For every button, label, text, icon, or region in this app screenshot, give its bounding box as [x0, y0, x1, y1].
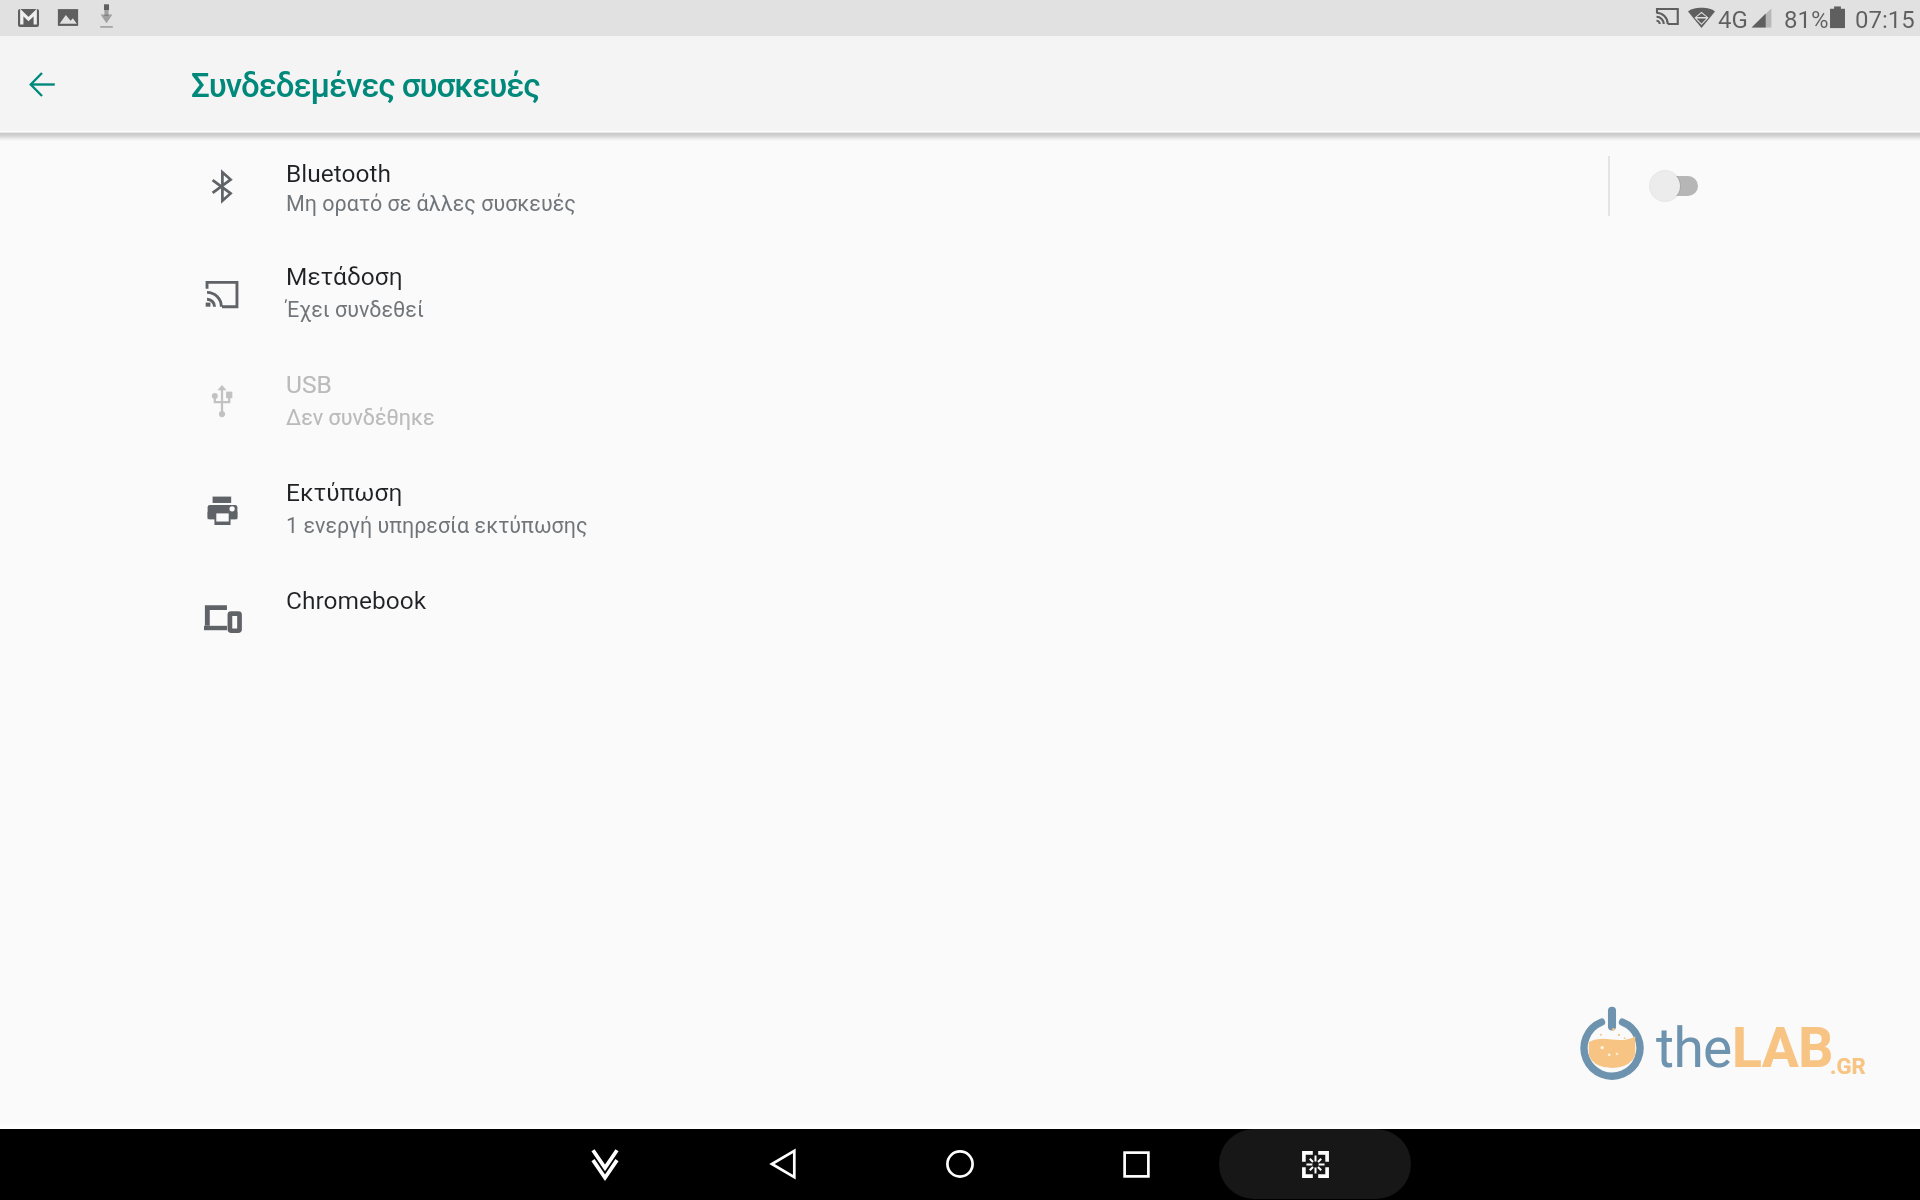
button[interactable]: Screenshot [1219, 1129, 1411, 1199]
button[interactable]: Recent apps [1108, 1136, 1164, 1192]
staticText: .GR [1830, 1054, 1866, 1080]
staticText: Μετάδοση [286, 262, 403, 291]
button[interactable]: Back [18, 60, 66, 108]
staticText: 81% [1784, 6, 1829, 34]
staticText: Chromebook [286, 586, 427, 615]
staticText: Έχει συνδεθεί [286, 297, 424, 322]
staticText: 1 ενεργή υπηρεσία εκτύπωσης [286, 513, 588, 538]
staticText: the [1656, 1016, 1732, 1080]
staticText: 4G [1718, 6, 1748, 34]
staticText: Συνδεδεμένες συσκευές [191, 66, 540, 105]
staticText: Μη ορατό σε άλλες συσκευές [286, 191, 576, 216]
button[interactable]: Back [755, 1136, 811, 1192]
staticText: 07:15 [1855, 6, 1915, 34]
button[interactable]: Hide navigation bar [577, 1136, 633, 1192]
button[interactable]: Bluetooth [0, 132, 1920, 240]
button[interactable]: Εκτύπωση [0, 456, 1920, 564]
button[interactable]: Toggle Bluetooth [1634, 158, 1714, 214]
staticText: Εκτύπωση [286, 478, 403, 507]
staticText: LAB [1732, 1016, 1833, 1080]
button[interactable]: USB [0, 348, 1920, 456]
staticText: Δεν συνδέθηκε [286, 405, 435, 430]
button[interactable]: Μετάδοση [0, 240, 1920, 348]
staticText: Bluetooth [286, 159, 391, 188]
button[interactable]: Chromebook [0, 564, 1920, 672]
staticText: USB [286, 370, 332, 399]
button[interactable]: Home [932, 1136, 988, 1192]
